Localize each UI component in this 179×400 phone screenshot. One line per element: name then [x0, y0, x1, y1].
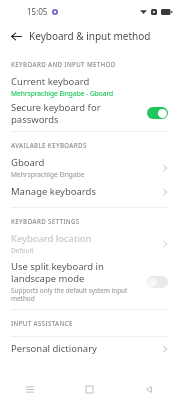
button[interactable]: Gboard [0, 156, 179, 179]
staticText: 15:05 [27, 6, 48, 17]
staticText: Keyboard & input method [29, 29, 151, 43]
button[interactable]: Toggle on [147, 107, 168, 119]
button[interactable]: Toggle off [147, 276, 168, 288]
button[interactable]: Use split keyboard in landscape mode [0, 260, 179, 303]
staticText: Current keyboard [11, 75, 90, 88]
button[interactable]: Back [119, 379, 179, 400]
button[interactable]: Keyboard location [0, 232, 179, 255]
staticText: Mehrsprachige Eingabe - Gboard [11, 89, 114, 98]
staticText: INPUT ASSISTANCE [11, 319, 73, 327]
staticText: AVAILABLE KEYBOARDS [11, 141, 87, 149]
staticText: Personal dictionary [11, 342, 162, 355]
button[interactable]: Manage keyboards [0, 183, 179, 200]
staticText: Default [11, 246, 34, 255]
staticText: Keyboard location [11, 232, 92, 245]
staticText: Gboard [11, 156, 45, 169]
button[interactable]: Recent apps [0, 379, 59, 400]
staticText: Secure keyboard for passwords [11, 101, 141, 125]
staticText: Manage keyboards [11, 185, 162, 198]
staticText: KEYBOARD AND INPUT METHOD [11, 60, 116, 68]
staticText: Supports only the default system input m… [11, 286, 141, 303]
staticText: Use split keyboard in landscape mode [11, 260, 141, 284]
button[interactable]: Current keyboard [0, 75, 179, 98]
button[interactable]: Secure keyboard for passwords [0, 101, 179, 125]
staticText: Mehrsprachige Eingabe [11, 170, 85, 179]
staticText: KEYBOARD SETTINGS [11, 217, 80, 225]
button[interactable]: Home [59, 379, 119, 400]
button[interactable]: Personal dictionary [0, 340, 179, 357]
button[interactable]: Back [5, 25, 27, 47]
